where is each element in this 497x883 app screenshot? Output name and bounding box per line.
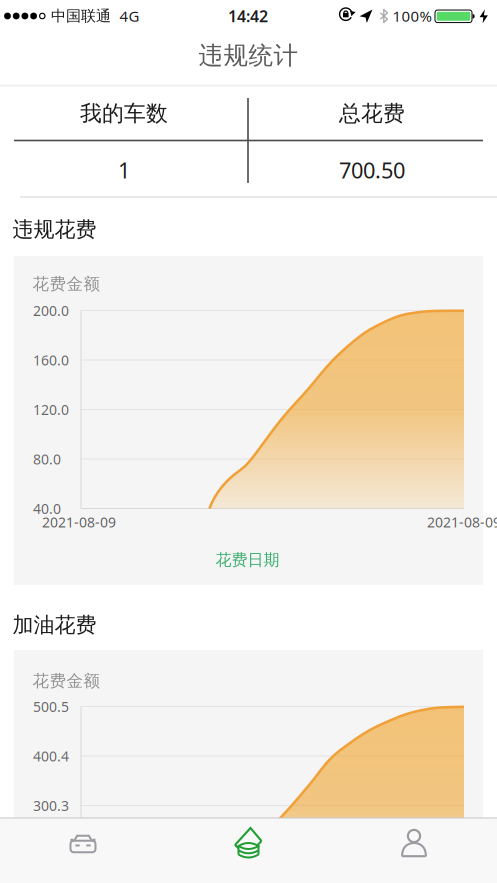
staticText: 100% (392, 6, 431, 26)
staticText: 120.0 (33, 400, 69, 419)
staticText: 700.50 (339, 155, 405, 185)
button[interactable]: Vehicles (0, 818, 166, 883)
staticText: 违规统计 (198, 40, 298, 71)
staticText: 4G (119, 6, 139, 26)
staticText: 总花费 (339, 100, 405, 127)
staticText: 2021-08-09 (42, 512, 116, 532)
staticText: 160.0 (33, 350, 69, 370)
button[interactable]: Statistics (166, 818, 331, 883)
staticText: 花费金额 (32, 274, 100, 294)
staticText: 300.3 (33, 796, 69, 815)
staticText: 我的车数 (80, 100, 168, 127)
button[interactable]: Profile (331, 818, 497, 883)
staticText: 花费金额 (32, 671, 100, 691)
staticText: 14:42 (228, 5, 268, 27)
staticText: 1 (118, 155, 130, 185)
staticText: 500.5 (33, 697, 69, 716)
staticText: 80.0 (33, 449, 61, 469)
staticText: 违规花费 (12, 216, 96, 243)
staticText: 40.0 (33, 499, 61, 518)
staticText: 200.0 (33, 301, 69, 320)
staticText: 中国联通 (51, 7, 111, 25)
staticText: 加油花费 (12, 612, 96, 638)
staticText: 花费日期 (215, 550, 279, 570)
staticText: 2021-08-09 (427, 512, 497, 532)
staticText: 400.4 (33, 746, 69, 766)
